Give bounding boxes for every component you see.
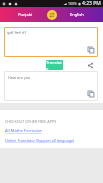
staticText: 100% (68, 1, 77, 6)
staticText: ਤੁਸੀਂ ਕਿਵੇਂ ਹੋ? (7, 30, 27, 35)
staticText: How are you (8, 75, 31, 80)
staticText: Translate (46, 60, 63, 70)
staticText: Punjabi (18, 12, 33, 17)
button[interactable]: Punjabi (0, 7, 51, 22)
staticText: English (70, 12, 84, 17)
button[interactable]: Swap languages (47, 10, 57, 20)
button[interactable]: Copy source text (88, 47, 94, 53)
button[interactable]: English (51, 7, 103, 22)
button[interactable]: Copy translation (88, 91, 94, 97)
button[interactable]: Share (86, 61, 94, 69)
staticText: 4:23 PM (82, 0, 101, 7)
button[interactable]: Translate (46, 60, 63, 70)
button[interactable]: Online Translator (Support all language) (5, 138, 75, 143)
staticText: CHECKOUT OTHER FREE APPS (5, 119, 57, 124)
button[interactable]: All Maths Formulas (5, 128, 42, 134)
